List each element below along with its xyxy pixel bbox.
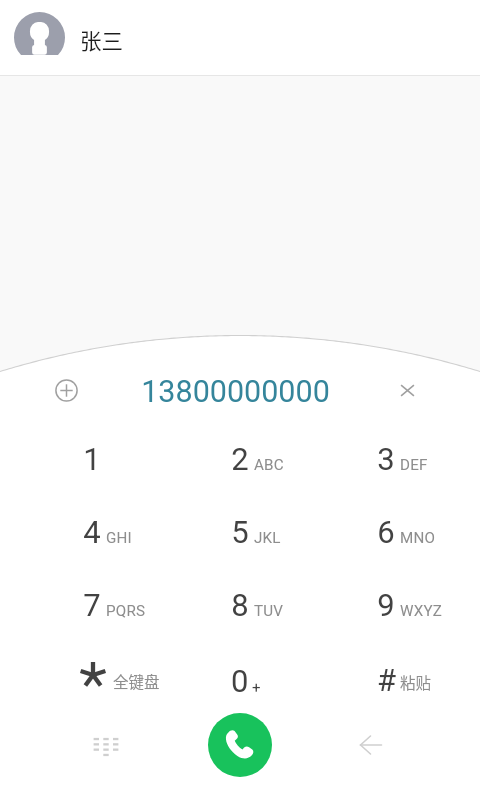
button[interactable]: # xyxy=(312,648,460,710)
staticText: 1 xyxy=(83,441,101,477)
staticText: WXYZ xyxy=(400,602,443,620)
button[interactable]: 0 xyxy=(166,648,314,710)
staticText: ABC xyxy=(254,456,284,474)
staticText: JKL xyxy=(254,529,281,547)
staticText: 4 xyxy=(83,514,101,550)
staticText: 张三 xyxy=(80,24,124,55)
staticText: MNO xyxy=(400,529,436,547)
staticText: 9 xyxy=(377,587,395,623)
staticText: 全键盘 xyxy=(113,670,160,692)
button[interactable]: 9 xyxy=(312,574,460,636)
button[interactable]: Hide keypad xyxy=(76,717,136,777)
staticText: 粘贴 xyxy=(400,671,432,693)
staticText: 13800000000 xyxy=(141,374,330,410)
button[interactable]: 13800000000 xyxy=(99,374,371,410)
button[interactable]: 张三 xyxy=(0,0,480,76)
button[interactable]: 5 xyxy=(166,501,314,563)
button[interactable]: Back xyxy=(341,715,401,775)
staticText: # xyxy=(377,662,397,698)
staticText: TUV xyxy=(254,602,284,620)
staticText: PQRS xyxy=(106,602,146,620)
button[interactable]: 8 xyxy=(166,574,314,636)
button[interactable]: 3 xyxy=(312,428,460,490)
staticText: 8 xyxy=(231,587,249,623)
button[interactable]: 6 xyxy=(312,501,460,563)
button[interactable]: 7 xyxy=(18,574,166,636)
button[interactable]: Add contact xyxy=(44,368,88,412)
staticText: 5 xyxy=(231,514,249,550)
staticText: GHI xyxy=(106,529,132,547)
staticText: DEF xyxy=(400,456,428,474)
staticText: 6 xyxy=(377,514,395,550)
button[interactable]: 4 xyxy=(18,501,166,563)
staticText: 0 xyxy=(231,663,249,699)
staticText: 3 xyxy=(377,441,395,477)
staticText: + xyxy=(252,679,261,697)
button[interactable]: 全键盘 xyxy=(18,648,166,710)
button[interactable]: 2 xyxy=(166,428,314,490)
button[interactable]: Delete xyxy=(385,368,429,412)
staticText: 2 xyxy=(231,441,249,477)
button[interactable]: 1 xyxy=(18,428,166,490)
button[interactable]: Call xyxy=(208,713,272,777)
staticText: 7 xyxy=(83,587,101,623)
